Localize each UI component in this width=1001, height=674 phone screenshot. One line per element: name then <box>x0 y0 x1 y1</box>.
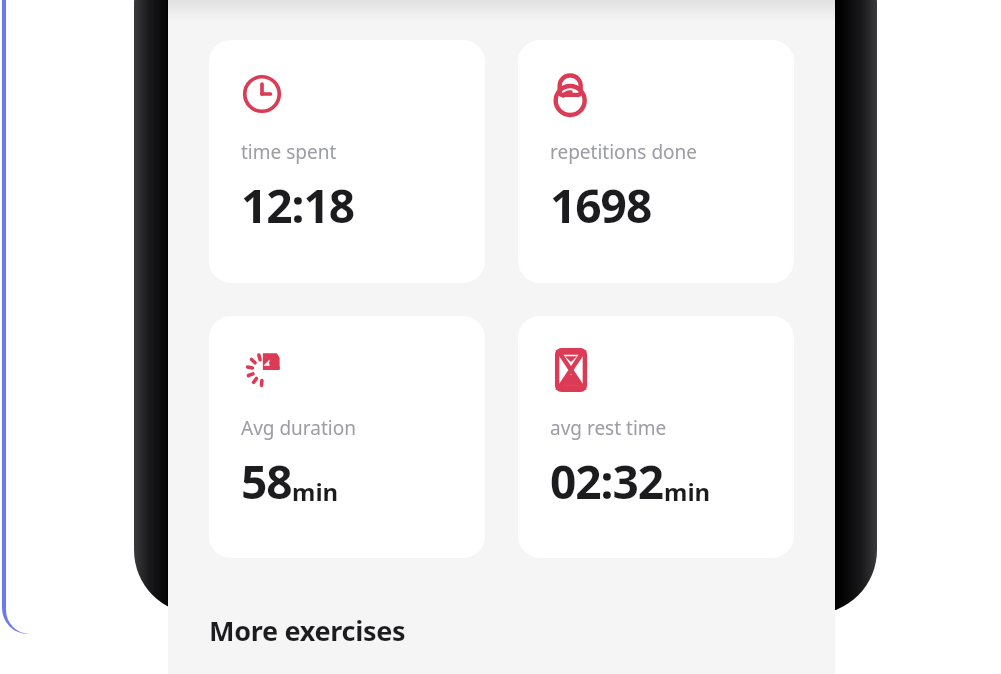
staticText: Avg duration <box>241 415 356 441</box>
button[interactable]: Average rest time <box>518 316 794 558</box>
button[interactable]: More exercises <box>209 612 406 662</box>
button[interactable]: Repetitions done <box>518 40 794 283</box>
staticText: avg rest time <box>550 415 667 441</box>
staticText: repetitions done <box>550 139 698 165</box>
staticText: 1698 <box>550 174 652 237</box>
staticText: min <box>292 475 339 508</box>
staticText: time spent <box>241 139 337 165</box>
button[interactable]: Average duration <box>209 316 485 558</box>
button[interactable]: Time spent <box>209 40 485 283</box>
staticText: 12:18 <box>241 174 355 237</box>
staticText: 02:32 <box>550 450 664 513</box>
staticText: More exercises <box>209 612 406 649</box>
staticText: min <box>664 475 711 508</box>
staticText: 58 <box>241 450 292 513</box>
